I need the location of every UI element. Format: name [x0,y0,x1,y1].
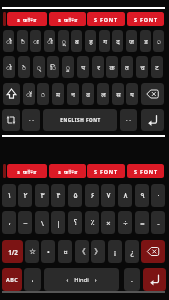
button[interactable]: ो [3,56,15,78]
button[interactable]: ॉ [23,83,35,105]
button[interactable]: ा [30,30,41,52]
staticText: ू [62,37,66,46]
button[interactable]: ि [47,56,59,78]
button[interactable]: • [41,240,55,263]
staticText: ी [47,37,53,46]
button[interactable]: ۱ [2,184,16,207]
button[interactable]: × [101,211,115,234]
button[interactable]: \ [35,211,49,234]
button[interactable]: ٪ [85,211,99,234]
button[interactable]: Switch keyboard [2,109,20,131]
button[interactable]: न [67,83,79,105]
button[interactable]: ट [151,56,163,78]
staticText: ☆ [29,247,36,256]
staticText: ़ [157,37,161,46]
button[interactable]: ¿ [125,240,139,263]
button[interactable]: ۴ [51,184,65,207]
staticText: ENGLISH FONT [60,117,101,123]
staticText: ۰ [156,191,161,200]
button[interactable]: 1/2 [2,240,23,263]
button[interactable]: व [82,83,94,105]
staticText: ट [155,63,159,72]
button[interactable]: ऽ फॉन्ट [49,12,86,26]
button[interactable]: ۳ [35,184,49,207]
button[interactable]: ¤ [58,240,72,263]
button[interactable]: ۸ [118,184,132,207]
button[interactable]: प [77,56,89,78]
button[interactable]: ड [140,30,151,52]
button[interactable]: ENGLISH FONT [43,109,117,131]
staticText: ड [144,37,148,46]
button[interactable]: ै [17,30,28,52]
button[interactable]: S FONT [87,164,125,178]
button[interactable]: ह [85,30,96,52]
staticText: ۶ [90,191,95,200]
button[interactable]: क [106,56,118,78]
button[interactable]: ऽ फॉन्ट [49,164,86,178]
button[interactable]: ۵ [68,184,82,207]
button[interactable]: ، [24,268,41,291]
button[interactable]: ۰ [151,184,165,207]
button[interactable]: ु [62,56,74,78]
button[interactable]: ं [37,83,49,105]
button[interactable]: ۹ [135,184,149,207]
button[interactable]: Backspace [141,240,165,263]
button[interactable]: · · [120,109,137,131]
button[interactable]: ू [58,30,69,52]
staticText: ऽ फॉन्ट [58,168,78,175]
button[interactable]: स [112,83,124,105]
button[interactable]: ۲ [18,184,32,207]
button[interactable]: ؟ [68,211,82,234]
button[interactable]: ़ [153,30,164,52]
staticText: ¤ [63,247,68,257]
button[interactable]: ी [44,30,55,52]
button[interactable]: ब [71,30,82,52]
button[interactable]: ल [97,83,109,105]
button[interactable]: Previous font [3,164,6,178]
button[interactable]: र [92,56,104,78]
button[interactable]: Shift [3,83,20,105]
staticText: ۱ [7,191,12,200]
button[interactable]: Enter [143,268,166,291]
button[interactable]: | [51,211,65,234]
button[interactable]: ज [126,30,137,52]
button[interactable]: य [126,83,138,105]
button[interactable]: े [18,56,30,78]
button[interactable]: ، [2,211,16,234]
button[interactable]: ۷ [101,184,115,207]
button[interactable]: . [124,268,140,291]
button[interactable]: ग [99,30,110,52]
button[interactable]: 》 [91,240,105,263]
button[interactable]: ۶ [85,184,99,207]
button[interactable]: 《 [75,240,89,263]
button[interactable]: Backspace [141,83,164,105]
button[interactable]: S FONT [87,12,125,26]
button[interactable]: ‹ Hindi › [44,268,119,291]
button[interactable]: · · [22,109,40,131]
button[interactable]: ÷ [118,211,132,234]
button[interactable]: ् [33,56,45,78]
button[interactable]: = [135,211,149,234]
button[interactable]: ऽ फॉन्ट [7,164,47,178]
staticText: ¡ [114,247,116,257]
button[interactable]: ☆ [25,240,39,263]
button[interactable]: ऽ फॉन्ट [7,12,47,26]
button[interactable]: च [136,56,148,78]
button[interactable]: S FONT [127,12,164,26]
staticText: ऽ फॉन्ट [17,16,37,23]
button[interactable]: द [112,30,123,52]
button[interactable]: ¡ [108,240,122,263]
button[interactable]: त [121,56,133,78]
button[interactable]: S FONT [127,164,164,178]
button[interactable]: ~ [18,211,32,234]
button[interactable]: ABC [2,268,22,291]
button[interactable]: म [52,83,64,105]
button[interactable]: Previous font [3,12,6,26]
staticText: ۵ [73,191,78,200]
button[interactable]: - [151,211,165,234]
staticText: - [157,218,160,228]
staticText: S FONT [94,168,118,175]
staticText: ा [33,37,39,46]
button[interactable]: ौ [3,30,14,52]
button[interactable]: Enter [141,109,164,131]
